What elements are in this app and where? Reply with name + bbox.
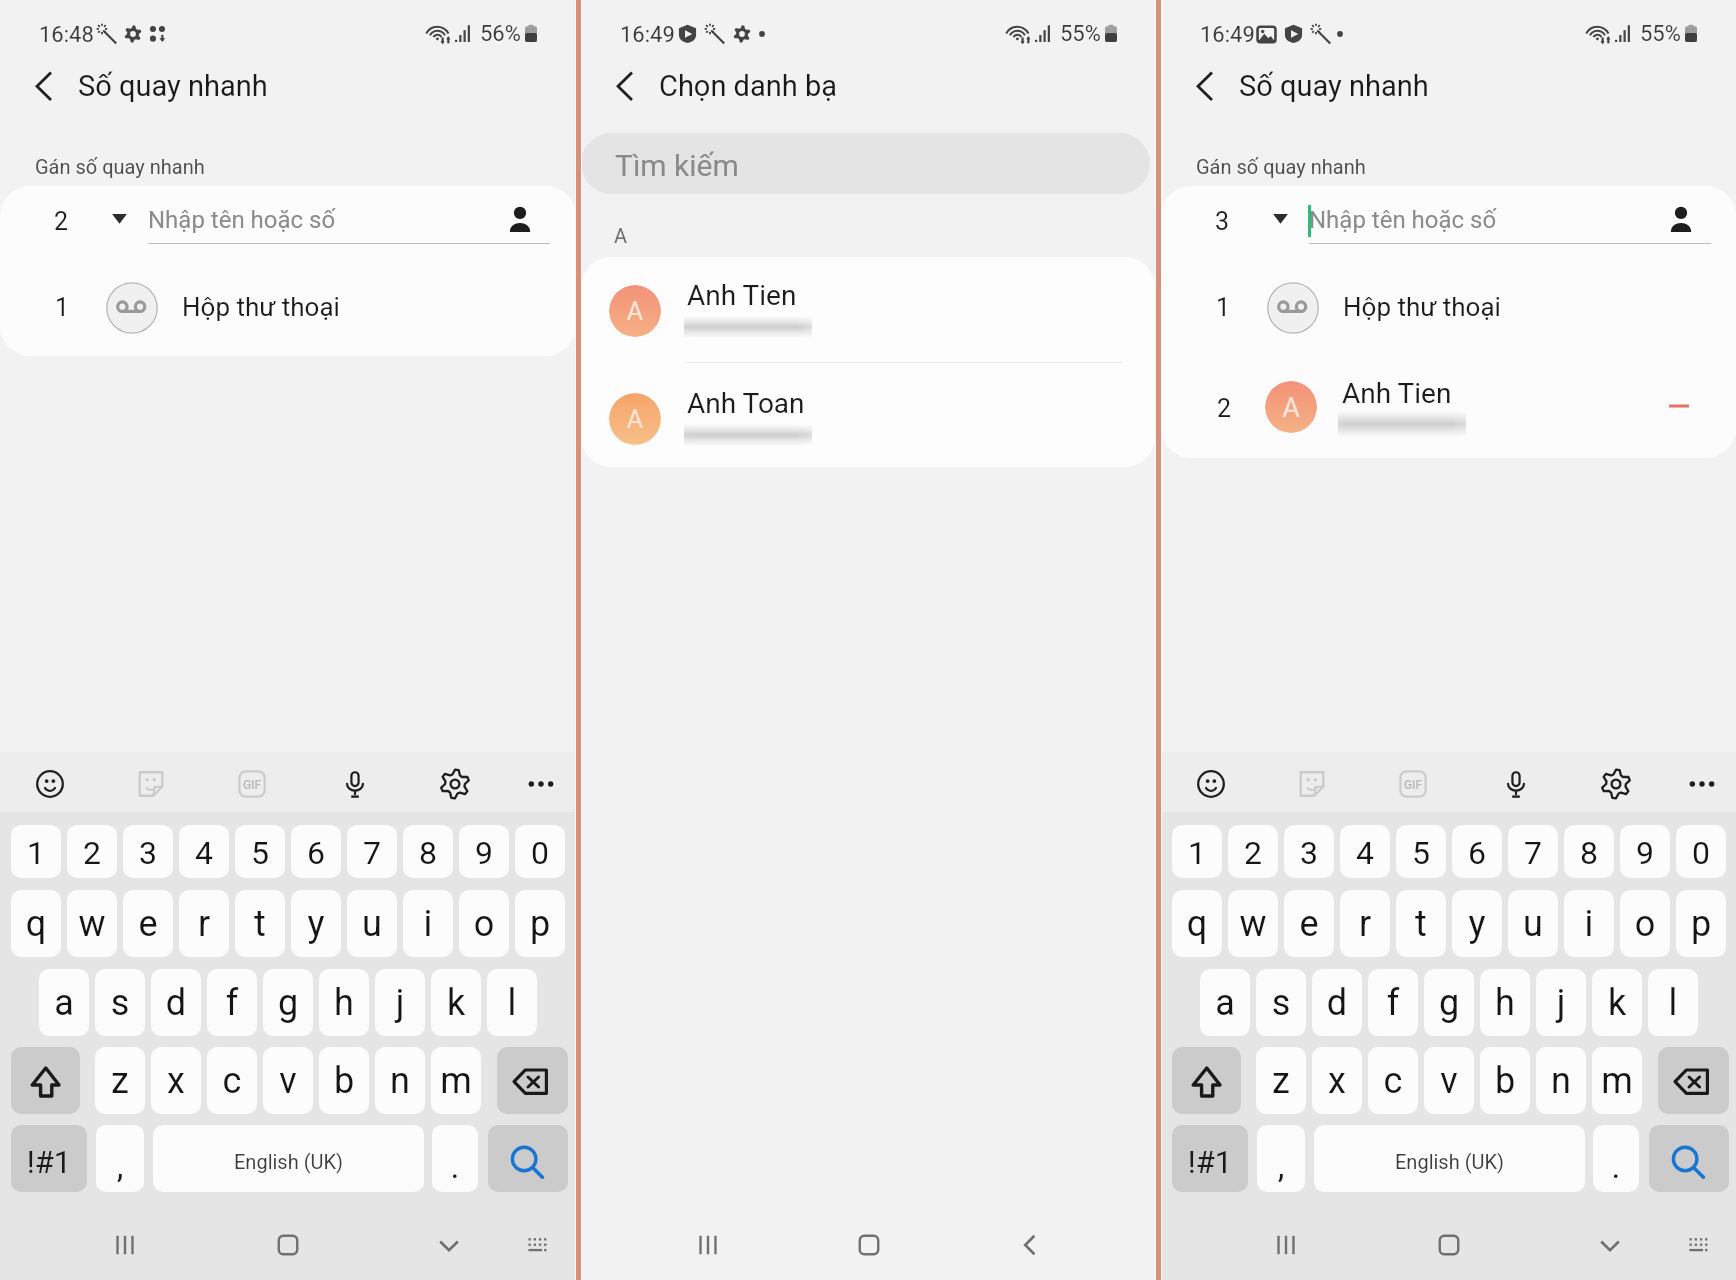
button[interactable]: n [375, 1047, 425, 1114]
button[interactable]: e [1284, 890, 1334, 957]
button[interactable]: Thêm [520, 763, 562, 805]
button[interactable]: r [1340, 890, 1390, 957]
button[interactable]: 1 [0, 281, 576, 356]
button[interactable]: 1 [11, 825, 61, 878]
button[interactable]: 6 [1452, 825, 1502, 878]
button[interactable]: v [263, 1047, 313, 1114]
button[interactable]: 8 [1564, 825, 1614, 878]
button[interactable]: 0 [515, 825, 565, 878]
button[interactable]: 6 [291, 825, 341, 878]
button[interactable]: y [1452, 890, 1502, 957]
button[interactable]: c [207, 1047, 257, 1114]
button[interactable]: b [319, 1047, 369, 1114]
button[interactable]: b [1480, 1047, 1530, 1114]
button[interactable]: Tìm kiếm [1649, 1125, 1729, 1192]
button[interactable]: English (UK) [1314, 1125, 1585, 1192]
button[interactable]: 3 [1284, 825, 1334, 878]
button[interactable]: GIF [231, 763, 273, 805]
button[interactable]: Ẩn bàn phím [427, 1223, 471, 1267]
button[interactable]: q [11, 890, 61, 957]
button[interactable]: Nhãn dán [1291, 763, 1333, 805]
button[interactable]: p [1676, 890, 1726, 957]
button[interactable]: Bàn phím [516, 1223, 560, 1267]
button[interactable]: d [151, 969, 201, 1036]
button[interactable]: Xóa [1658, 1047, 1729, 1114]
button[interactable]: h [319, 969, 369, 1036]
button[interactable]: t [1396, 890, 1446, 957]
button[interactable]: Tìm kiếm [581, 133, 1150, 194]
button[interactable]: a [39, 969, 89, 1036]
button[interactable]: w [1228, 890, 1278, 957]
button[interactable]: 8 [403, 825, 453, 878]
button[interactable]: z [95, 1047, 145, 1114]
button[interactable]: 5 [235, 825, 285, 878]
button[interactable]: Nhập bằng giọng nói [1495, 763, 1537, 805]
button[interactable]: Cài đặt [1595, 763, 1637, 805]
button[interactable]: n [1536, 1047, 1586, 1114]
button[interactable]: Gần đây [686, 1223, 730, 1267]
button[interactable]: Màn hình chính [1427, 1223, 1471, 1267]
button[interactable]: Quay lại [21, 60, 71, 110]
button[interactable]: Bàn phím [1677, 1223, 1721, 1267]
button[interactable]: k [431, 969, 481, 1036]
button[interactable]: Gần đây [1264, 1223, 1308, 1267]
button[interactable]: Màn hình chính [266, 1223, 310, 1267]
button[interactable]: d [1312, 969, 1362, 1036]
button[interactable]: y [291, 890, 341, 957]
button[interactable]: v [1424, 1047, 1474, 1114]
button[interactable]: Gần đây [103, 1223, 147, 1267]
button[interactable]: l [487, 969, 537, 1036]
button[interactable]: !#1 [1172, 1125, 1248, 1192]
button[interactable]: Xóa [1663, 390, 1695, 422]
button[interactable]: Quay lại [602, 60, 652, 110]
button[interactable]: English (UK) [153, 1125, 424, 1192]
button[interactable]: q [1172, 890, 1222, 957]
button[interactable]: j [375, 969, 425, 1036]
button[interactable]: f [207, 969, 257, 1036]
button[interactable]: GIF [1392, 763, 1434, 805]
button[interactable]: i [1564, 890, 1614, 957]
button[interactable]: A [581, 393, 1155, 467]
button[interactable]: l [1648, 969, 1698, 1036]
button[interactable]: Nhãn dán [130, 763, 172, 805]
button[interactable]: Thêm [1681, 763, 1723, 805]
button[interactable]: Nhập bằng giọng nói [334, 763, 376, 805]
button[interactable]: 1 [1172, 825, 1222, 878]
button[interactable]: . [1593, 1125, 1639, 1192]
button[interactable]: !#1 [11, 1125, 87, 1192]
button[interactable]: o [1620, 890, 1670, 957]
button[interactable]: x [1312, 1047, 1362, 1114]
button[interactable]: 5 [1396, 825, 1446, 878]
button[interactable]: , [96, 1125, 144, 1192]
button[interactable]: 2 [1161, 381, 1736, 447]
button[interactable]: Chọn danh bạ [505, 202, 535, 232]
button[interactable]: Chọn vị trí [100, 195, 139, 234]
button[interactable]: 7 [1508, 825, 1558, 878]
button[interactable]: c [1368, 1047, 1418, 1114]
button[interactable]: Màn hình chính [847, 1223, 891, 1267]
button[interactable]: u [347, 890, 397, 957]
button[interactable]: 1 [1161, 281, 1736, 356]
button[interactable]: s [95, 969, 145, 1036]
button[interactable]: m [1592, 1047, 1642, 1114]
button[interactable]: 3 [123, 825, 173, 878]
button[interactable]: Chọn vị trí [1261, 195, 1300, 234]
button[interactable]: z [1256, 1047, 1306, 1114]
button[interactable]: Emoji [29, 763, 71, 805]
button[interactable]: Quay lại [1182, 60, 1232, 110]
button[interactable]: Shift [1172, 1047, 1241, 1114]
button[interactable]: Cài đặt [434, 763, 476, 805]
button[interactable]: j [1536, 969, 1586, 1036]
button[interactable]: k [1592, 969, 1642, 1036]
button[interactable]: 2 [1228, 825, 1278, 878]
button[interactable]: 4 [1340, 825, 1390, 878]
button[interactable]: t [235, 890, 285, 957]
button[interactable]: g [1424, 969, 1474, 1036]
button[interactable]: m [431, 1047, 481, 1114]
button[interactable]: Tìm kiếm [488, 1125, 568, 1192]
button[interactable]: a [1200, 969, 1250, 1036]
button[interactable]: r [179, 890, 229, 957]
button[interactable]: p [515, 890, 565, 957]
button[interactable]: s [1256, 969, 1306, 1036]
button[interactable]: w [67, 890, 117, 957]
